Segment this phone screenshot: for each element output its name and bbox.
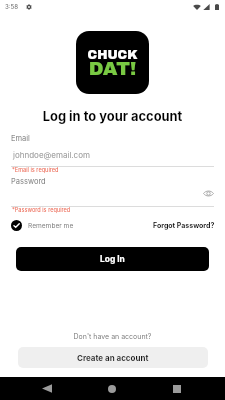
- button[interactable]: Home: [94, 377, 130, 400]
- button[interactable]: Forgot Password?: [153, 221, 215, 229]
- staticText: Password: [11, 177, 46, 186]
- staticText: johndoe@email.com: [13, 150, 90, 160]
- staticText: 3:58: [5, 3, 19, 11]
- staticText: DAT!: [76, 58, 149, 79]
- staticText: Remember me: [28, 222, 74, 230]
- button[interactable]: Remember me: [11, 220, 74, 231]
- staticText: Don't have an account?: [0, 332, 225, 340]
- staticText: CHUCK: [76, 48, 149, 61]
- staticText: *Email is required: [12, 167, 59, 174]
- button[interactable]: Back: [29, 377, 65, 400]
- staticText: Log in to your account: [0, 109, 225, 125]
- button[interactable]: Log In: [16, 247, 209, 271]
- staticText: Log In: [100, 254, 125, 264]
- button[interactable]: Create an account: [18, 347, 208, 368]
- staticText: Create an account: [77, 353, 149, 363]
- button[interactable]: Recent apps: [159, 377, 195, 400]
- staticText: Email: [11, 134, 30, 143]
- button[interactable]: Show password: [202, 187, 214, 199]
- staticText: Forgot Password?: [153, 221, 215, 229]
- staticText: *Password is required: [12, 207, 71, 214]
